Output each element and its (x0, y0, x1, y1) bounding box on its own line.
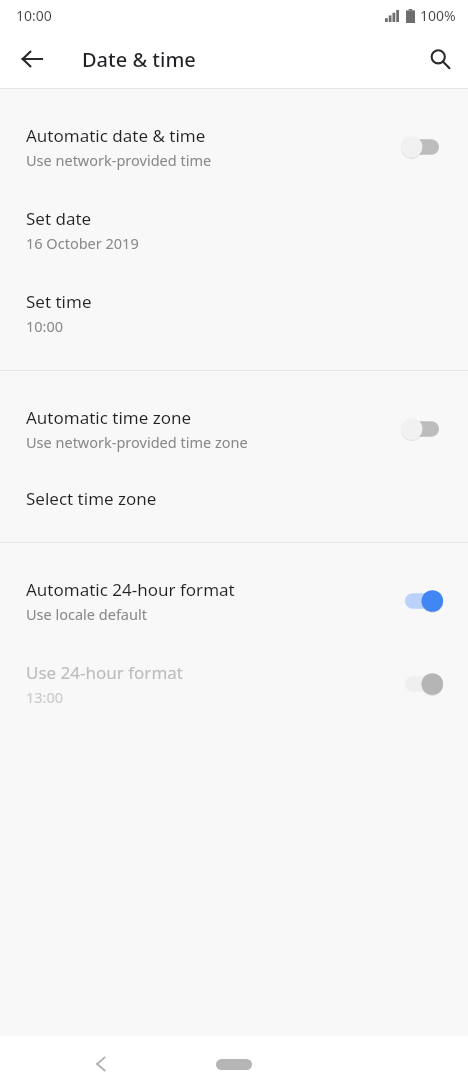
button[interactable]: Toggle (396, 584, 448, 618)
staticText: Automatic time zone (26, 406, 192, 429)
button[interactable]: Toggle (396, 412, 448, 446)
staticText: 10:00 (16, 6, 52, 25)
button[interactable]: Back (8, 35, 56, 83)
staticText: 100% (420, 6, 456, 25)
staticText: Set time (26, 290, 92, 313)
staticText: Select time zone (26, 487, 157, 510)
staticText: Automatic 24-hour format (26, 578, 235, 601)
button[interactable]: Back (78, 1041, 124, 1087)
staticText: 13:00 (26, 687, 64, 707)
staticText: Use 24-hour format (26, 661, 183, 684)
staticText: Automatic date & time (26, 124, 206, 147)
staticText: 16 October 2019 (26, 233, 139, 253)
staticText: Date & time (82, 46, 196, 73)
staticText: 10:00 (26, 316, 64, 336)
button[interactable]: Home (205, 1047, 263, 1081)
button[interactable]: Use 24-hour format (0, 642, 468, 725)
button[interactable]: Automatic 24-hour format (0, 559, 468, 642)
button[interactable]: Search (416, 35, 464, 83)
button[interactable]: Toggle (396, 130, 448, 164)
button[interactable]: Toggle (396, 667, 448, 701)
staticText: Use network-provided time zone (26, 432, 248, 452)
button[interactable]: Set time (0, 271, 468, 354)
staticText: Set date (26, 207, 92, 230)
staticText: Use network-provided time (26, 150, 212, 170)
staticText: Use locale default (26, 604, 147, 624)
button[interactable]: Set date (0, 188, 468, 271)
button[interactable]: Automatic time zone (0, 387, 468, 470)
button[interactable]: Select time zone (0, 470, 468, 526)
button[interactable]: Automatic date & time (0, 105, 468, 188)
